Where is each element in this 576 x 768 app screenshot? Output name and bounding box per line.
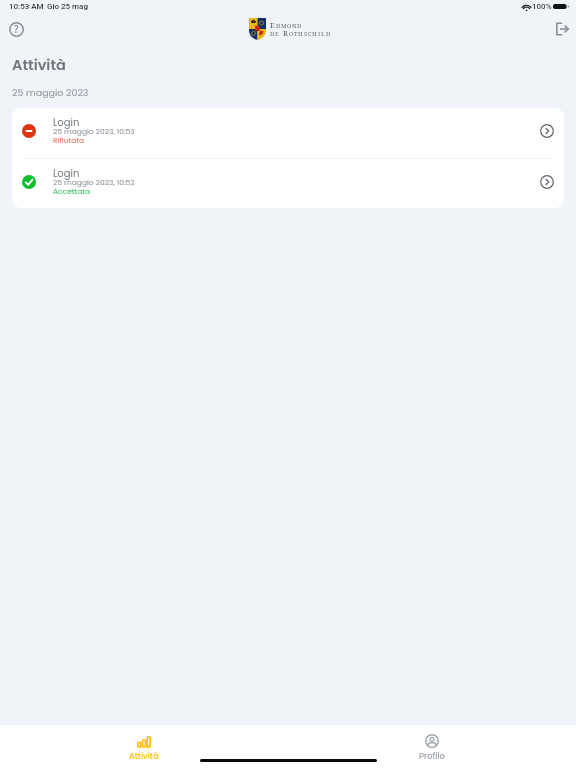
staticText: Profilo (419, 750, 445, 760)
staticText: N (292, 22, 297, 30)
staticText: 25 maggio 2023, 10:52 (53, 177, 135, 187)
button[interactable]: Profilo (402, 734, 462, 760)
button[interactable]: Help (5, 18, 27, 40)
staticText: D (297, 22, 302, 30)
staticText: D (276, 22, 281, 30)
staticText: 10:53 AM (9, 2, 44, 11)
button[interactable]: Dettagli (536, 120, 558, 142)
staticText: T (294, 30, 298, 38)
button[interactable]: Login (12, 159, 564, 208)
staticText: O (287, 22, 292, 30)
staticText: L (321, 30, 326, 38)
staticText: S (304, 30, 308, 38)
staticText: ? (14, 22, 19, 36)
staticText: 25 maggio 2023, 10:53 (53, 126, 135, 136)
staticText: E (275, 30, 280, 38)
staticText: 100% (532, 2, 552, 11)
staticText: H (312, 30, 318, 38)
button[interactable]: Logout (551, 18, 573, 40)
staticText: D (326, 30, 331, 38)
button[interactable]: Dettagli (536, 171, 558, 193)
staticText: Login (53, 115, 80, 129)
staticText: M (281, 22, 287, 30)
staticText: Attività (12, 55, 66, 75)
staticText: E (270, 20, 276, 30)
staticText: Login (53, 166, 80, 180)
staticText: C (308, 30, 312, 38)
staticText: 25 maggio 2023 (12, 86, 89, 99)
staticText: Gio 25 mag (47, 2, 88, 11)
button[interactable]: Attività (114, 736, 174, 762)
staticText: D (270, 30, 275, 38)
staticText: Accettata (53, 186, 91, 196)
button[interactable]: Login (12, 108, 564, 158)
staticText: H (298, 30, 304, 38)
staticText: O (289, 30, 294, 38)
staticText: Attività (129, 750, 159, 762)
staticText: Rifiutata (53, 135, 85, 145)
staticText: R (283, 28, 289, 38)
staticText: I (318, 30, 321, 38)
